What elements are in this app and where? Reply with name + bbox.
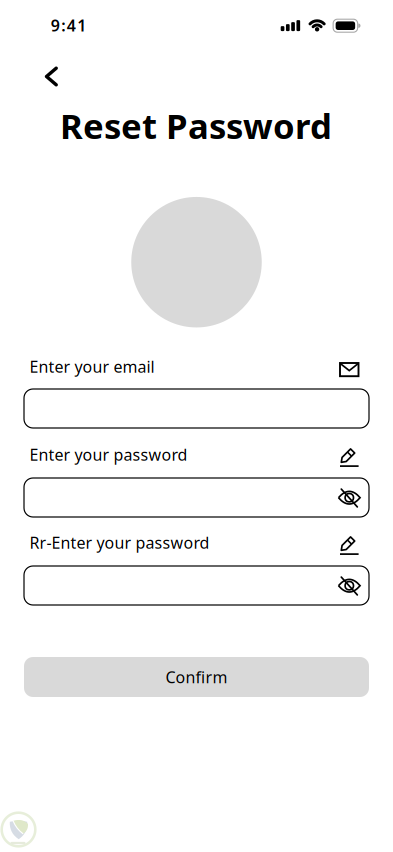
button[interactable]: Back	[41, 66, 61, 86]
staticText: Confirm	[165, 666, 227, 688]
staticText: Reset Password	[60, 102, 332, 148]
staticText: Rr-Enter your password	[29, 532, 209, 553]
button[interactable]: Show password	[336, 575, 362, 597]
staticText: Enter your password	[29, 444, 187, 465]
staticText: 9:41	[51, 15, 86, 36]
button[interactable]: Show password	[336, 487, 362, 509]
button[interactable]: Confirm	[24, 657, 369, 697]
staticText: Enter your email	[29, 356, 154, 377]
